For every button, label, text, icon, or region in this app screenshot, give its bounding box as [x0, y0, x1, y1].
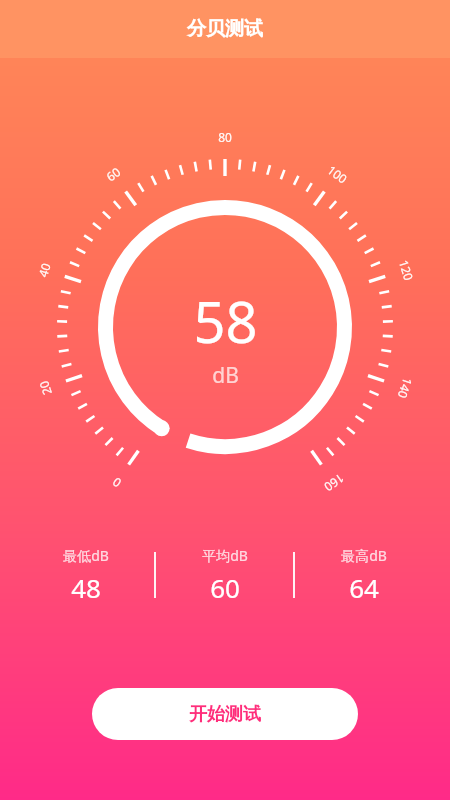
staticText: 100	[324, 161, 351, 187]
button[interactable]: 最低dB	[18, 546, 154, 605]
button[interactable]: 最高dB	[295, 546, 432, 605]
staticText: 60	[103, 163, 123, 185]
staticText: 20	[35, 379, 55, 397]
staticText: 80	[218, 129, 232, 145]
staticText: 最低dB	[63, 546, 109, 565]
staticText: 64	[349, 570, 379, 605]
button[interactable]: 开始测试	[92, 688, 358, 740]
button[interactable]: 平均dB	[156, 546, 293, 605]
staticText: 最高dB	[341, 546, 387, 565]
staticText: 140	[394, 375, 416, 400]
staticText: 分贝测试	[187, 17, 263, 41]
staticText: 平均dB	[202, 546, 248, 565]
staticText: 120	[396, 258, 417, 282]
staticText: dB	[212, 361, 239, 390]
staticText: 60	[210, 570, 240, 605]
staticText: 开始测试	[189, 703, 261, 726]
staticText: 48	[71, 570, 101, 605]
staticText: 0	[109, 474, 124, 491]
staticText: 58	[193, 283, 258, 359]
staticText: 40	[34, 261, 54, 279]
staticText: 160	[321, 470, 348, 496]
